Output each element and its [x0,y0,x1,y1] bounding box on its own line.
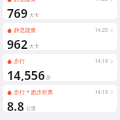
staticText: 769 [7,5,28,19]
staticText: 静息能量 [14,27,36,34]
button[interactable]: Steps 14,556 [3,54,117,81]
staticText: 8.8 [7,98,25,112]
staticText: 大卡 [29,12,39,18]
staticText: 步 [46,74,51,80]
staticText: 大卡 [29,43,39,49]
staticText: 14:20 [95,0,108,3]
staticText: 14:20 [95,27,108,34]
staticText: 14:19 [95,58,108,65]
staticText: 步行 + 跑步距离 [14,88,54,96]
staticText: 14:19 [95,89,108,96]
button[interactable]: Resting energy 962 kcal [3,23,117,50]
button[interactable]: Resting energy 769 kcal [3,0,117,19]
staticText: 公里 [26,105,36,111]
button[interactable]: Walking running distance 8.8 km [3,85,117,112]
staticText: 静息能量 [14,0,36,3]
staticText: 步行 [14,58,25,65]
staticText: 14,556 [7,67,45,81]
staticText: 962 [7,36,28,50]
